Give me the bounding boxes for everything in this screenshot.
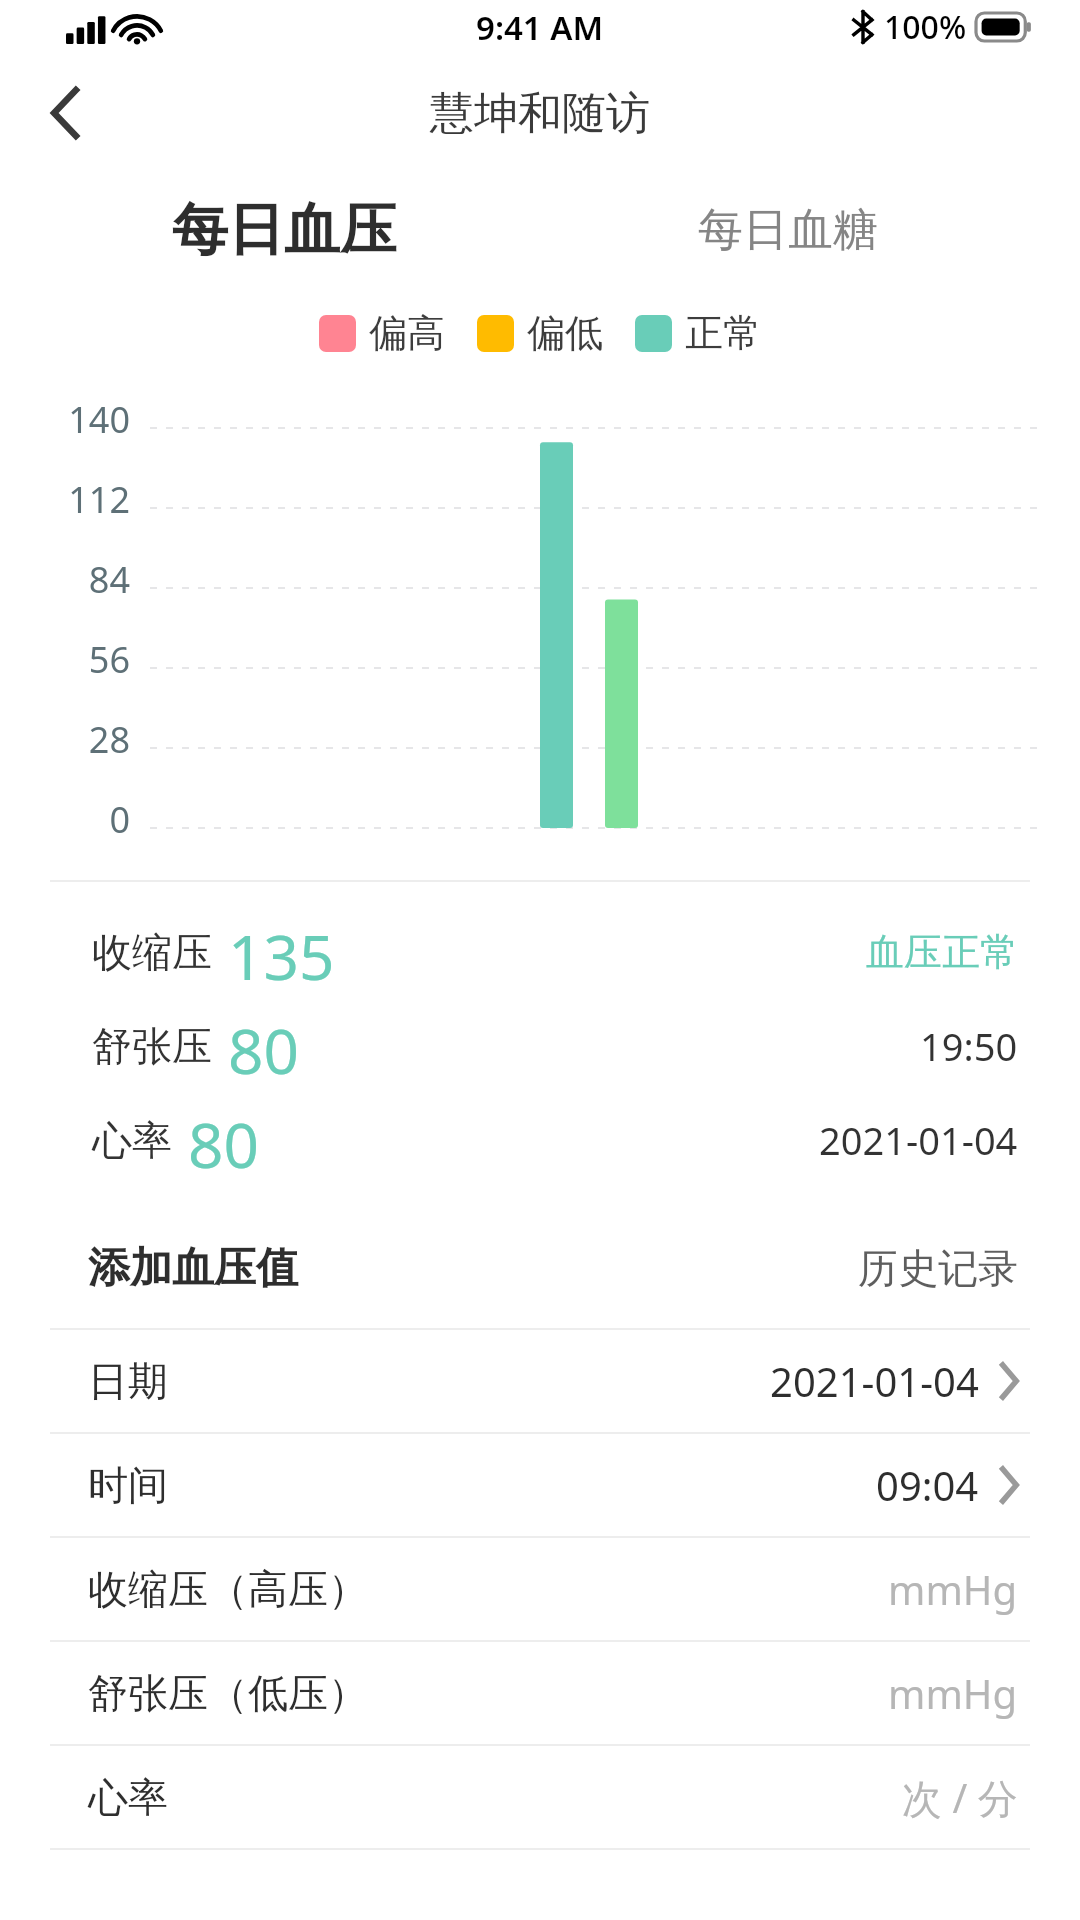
staticText: 血压正常: [866, 928, 1018, 976]
staticText: 80: [188, 1102, 259, 1178]
staticText: 心率: [88, 1772, 168, 1822]
staticText: 日期: [88, 1356, 168, 1406]
button[interactable]: Back: [0, 62, 130, 164]
staticText: 28: [88, 715, 130, 764]
staticText: 舒张压: [92, 1021, 212, 1071]
staticText: 140: [68, 395, 130, 444]
button[interactable]: 历史记录: [858, 1243, 1018, 1293]
staticText: 80: [228, 1008, 299, 1084]
button[interactable]: 舒张压（低压）: [0, 1642, 1080, 1744]
staticText: 慧坤和随访: [430, 86, 650, 141]
staticText: 135: [228, 914, 335, 990]
staticText: 2021-01-04: [819, 1114, 1018, 1166]
staticText: 56: [88, 635, 130, 684]
staticText: 9:41 AM: [476, 5, 604, 50]
staticText: mmHg: [888, 1666, 1018, 1720]
button[interactable]: 收缩压（高压）: [0, 1538, 1080, 1640]
staticText: mmHg: [888, 1562, 1018, 1616]
staticText: 19:50: [920, 1020, 1018, 1072]
staticText: 84: [88, 555, 130, 604]
button[interactable]: 心率: [0, 1746, 1080, 1848]
button[interactable]: 时间: [0, 1434, 1080, 1536]
button[interactable]: 日期: [0, 1330, 1080, 1432]
staticText: 心率: [92, 1115, 172, 1165]
staticText: 舒张压（低压）: [88, 1668, 368, 1718]
staticText: 偏高: [369, 309, 445, 357]
staticText: 次 / 分: [902, 1770, 1018, 1825]
staticText: 每日血糖: [698, 202, 878, 259]
staticText: 偏低: [527, 309, 603, 357]
staticText: 每日血压: [172, 195, 396, 266]
button[interactable]: 添加血压值: [88, 1242, 298, 1295]
staticText: 时间: [88, 1460, 168, 1510]
button[interactable]: 每日血压: [150, 181, 418, 280]
staticText: 收缩压: [92, 927, 212, 977]
staticText: 正常: [685, 309, 761, 357]
staticText: 收缩压（高压）: [88, 1564, 368, 1614]
staticText: 112: [68, 475, 130, 524]
staticText: 0: [109, 795, 130, 844]
button[interactable]: 每日血糖: [676, 188, 900, 273]
staticText: 100%: [884, 5, 967, 49]
staticText: 09:04: [876, 1458, 979, 1512]
staticText: 2021-01-04: [770, 1354, 979, 1408]
